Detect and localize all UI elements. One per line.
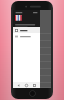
button[interactable]: Recents <box>32 83 37 88</box>
button[interactable]: Back <box>16 83 21 88</box>
button[interactable] <box>13 33 40 39</box>
button[interactable]: Side panel <box>40 10 51 88</box>
button[interactable]: Home <box>24 83 29 88</box>
button[interactable] <box>13 27 40 33</box>
button[interactable]: Home button <box>29 90 36 97</box>
button[interactable]: App artwork <box>13 10 40 27</box>
button[interactable]: App artwork <box>15 15 22 22</box>
